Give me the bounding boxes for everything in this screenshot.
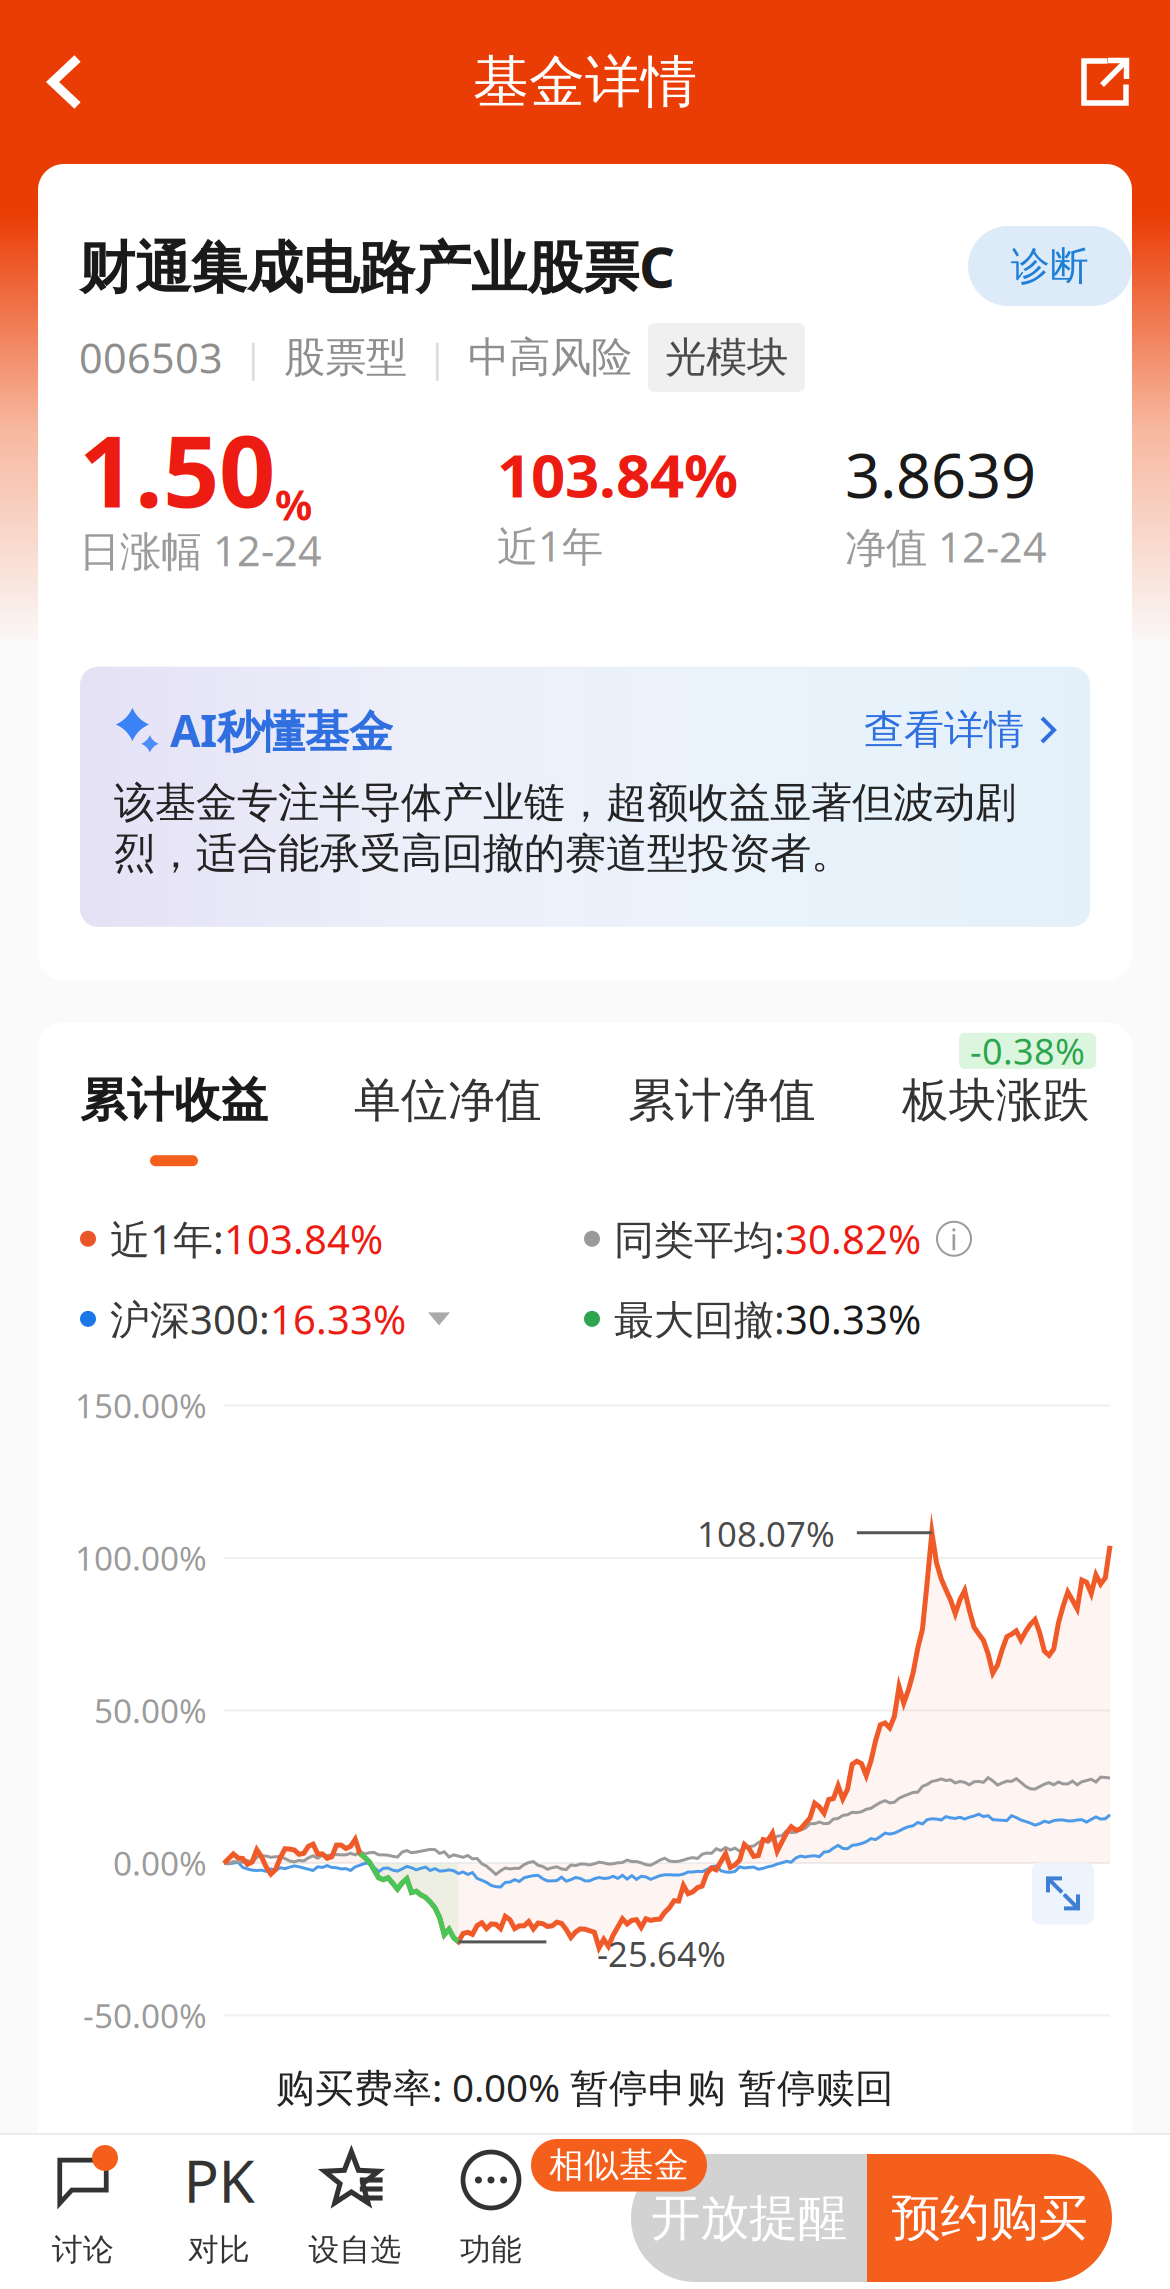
staticText: 日涨幅 12-24 <box>79 523 322 578</box>
staticText: 诊断 <box>1011 242 1089 290</box>
staticText: 净值 12-24 <box>845 519 1047 574</box>
staticText: % <box>275 477 312 532</box>
staticText: AI秒懂基金 <box>170 701 393 759</box>
staticText: 累计收益 <box>80 1072 268 1129</box>
staticText: 同类平均: <box>614 1212 785 1265</box>
button[interactable]: 分享 <box>1057 22 1153 142</box>
button[interactable]: 返回 <box>17 22 113 142</box>
staticText: 购买费率: 0.00% 暂停申购 暂停赎回 <box>276 2061 894 2113</box>
staticText: 近1年: <box>110 1212 224 1265</box>
staticText: 103.84% <box>224 1212 383 1265</box>
button[interactable]: 板块涨跌 <box>902 1072 1090 1129</box>
button[interactable]: PK <box>151 2125 287 2289</box>
button[interactable]: 设自选 <box>287 2125 423 2289</box>
staticText: -25.64% <box>597 1930 726 1976</box>
staticText: 3.8639 <box>845 434 1036 515</box>
staticText: 16.33% <box>270 1292 406 1345</box>
staticText: | <box>427 333 448 382</box>
staticText: 预约购买 <box>891 2188 1087 2248</box>
staticText: 财通集成电路产业股票C <box>79 229 675 303</box>
button[interactable]: 单位净值 <box>354 1072 542 1129</box>
staticText: 30.33% <box>785 1292 921 1345</box>
button[interactable]: 功能 <box>423 2125 559 2289</box>
staticText: 光模块 <box>665 332 788 383</box>
staticText: 基金详情 <box>473 48 697 116</box>
staticText: | <box>243 333 264 382</box>
staticText: 对比 <box>188 2231 250 2269</box>
staticText: 中高风险 <box>468 332 632 383</box>
staticText: 开放提醒 <box>651 2188 847 2248</box>
staticText: -50.00% <box>83 1993 207 2038</box>
button[interactable]: 讨论 <box>15 2125 151 2289</box>
staticText: 0.00% <box>113 1841 207 1885</box>
button[interactable]: 诊断 <box>968 226 1132 306</box>
staticText: PK <box>183 2141 254 2219</box>
staticText: 1.50 <box>79 404 275 535</box>
staticText: 150.00% <box>75 1383 207 1428</box>
staticText: 该基金专注半导体产业链，超额收益显著但波动剧 烈，适合能承受高回撤的赛道型投资者… <box>114 777 1016 879</box>
button[interactable]: 开放提醒 <box>631 2154 867 2282</box>
staticText: 累计净值 <box>628 1072 816 1129</box>
staticText: 100.00% <box>75 1536 207 1580</box>
staticText: 功能 <box>460 2231 522 2269</box>
staticText: 板块涨跌 <box>902 1072 1090 1129</box>
staticText: 近1年 <box>497 518 603 573</box>
staticText: 相似基金 <box>549 2144 689 2187</box>
staticText: 讨论 <box>52 2231 114 2269</box>
staticText: 最大回撤: <box>614 1292 785 1345</box>
button[interactable]: 预约购买 <box>867 2154 1112 2282</box>
staticText: 006503 <box>79 330 223 385</box>
staticText: 沪深300: <box>110 1292 270 1345</box>
staticText: 50.00% <box>94 1688 207 1733</box>
button[interactable]: 累计收益 <box>80 1072 268 1166</box>
staticText: 108.07% <box>697 1510 835 1556</box>
button[interactable]: AI秒懂基金 <box>80 667 1090 927</box>
staticText: 30.82% <box>785 1212 921 1265</box>
staticText: -0.38% <box>970 1027 1085 1075</box>
staticText: 单位净值 <box>354 1072 542 1129</box>
button[interactable]: 累计净值 <box>628 1072 816 1129</box>
staticText: 查看详情 <box>864 705 1024 754</box>
button[interactable]: 全屏查看 <box>1032 1862 1094 1924</box>
staticText: i <box>950 1219 958 1258</box>
staticText: 股票型 <box>284 332 407 383</box>
staticText: 103.84% <box>497 434 738 514</box>
staticText: 设自选 <box>308 2231 401 2269</box>
